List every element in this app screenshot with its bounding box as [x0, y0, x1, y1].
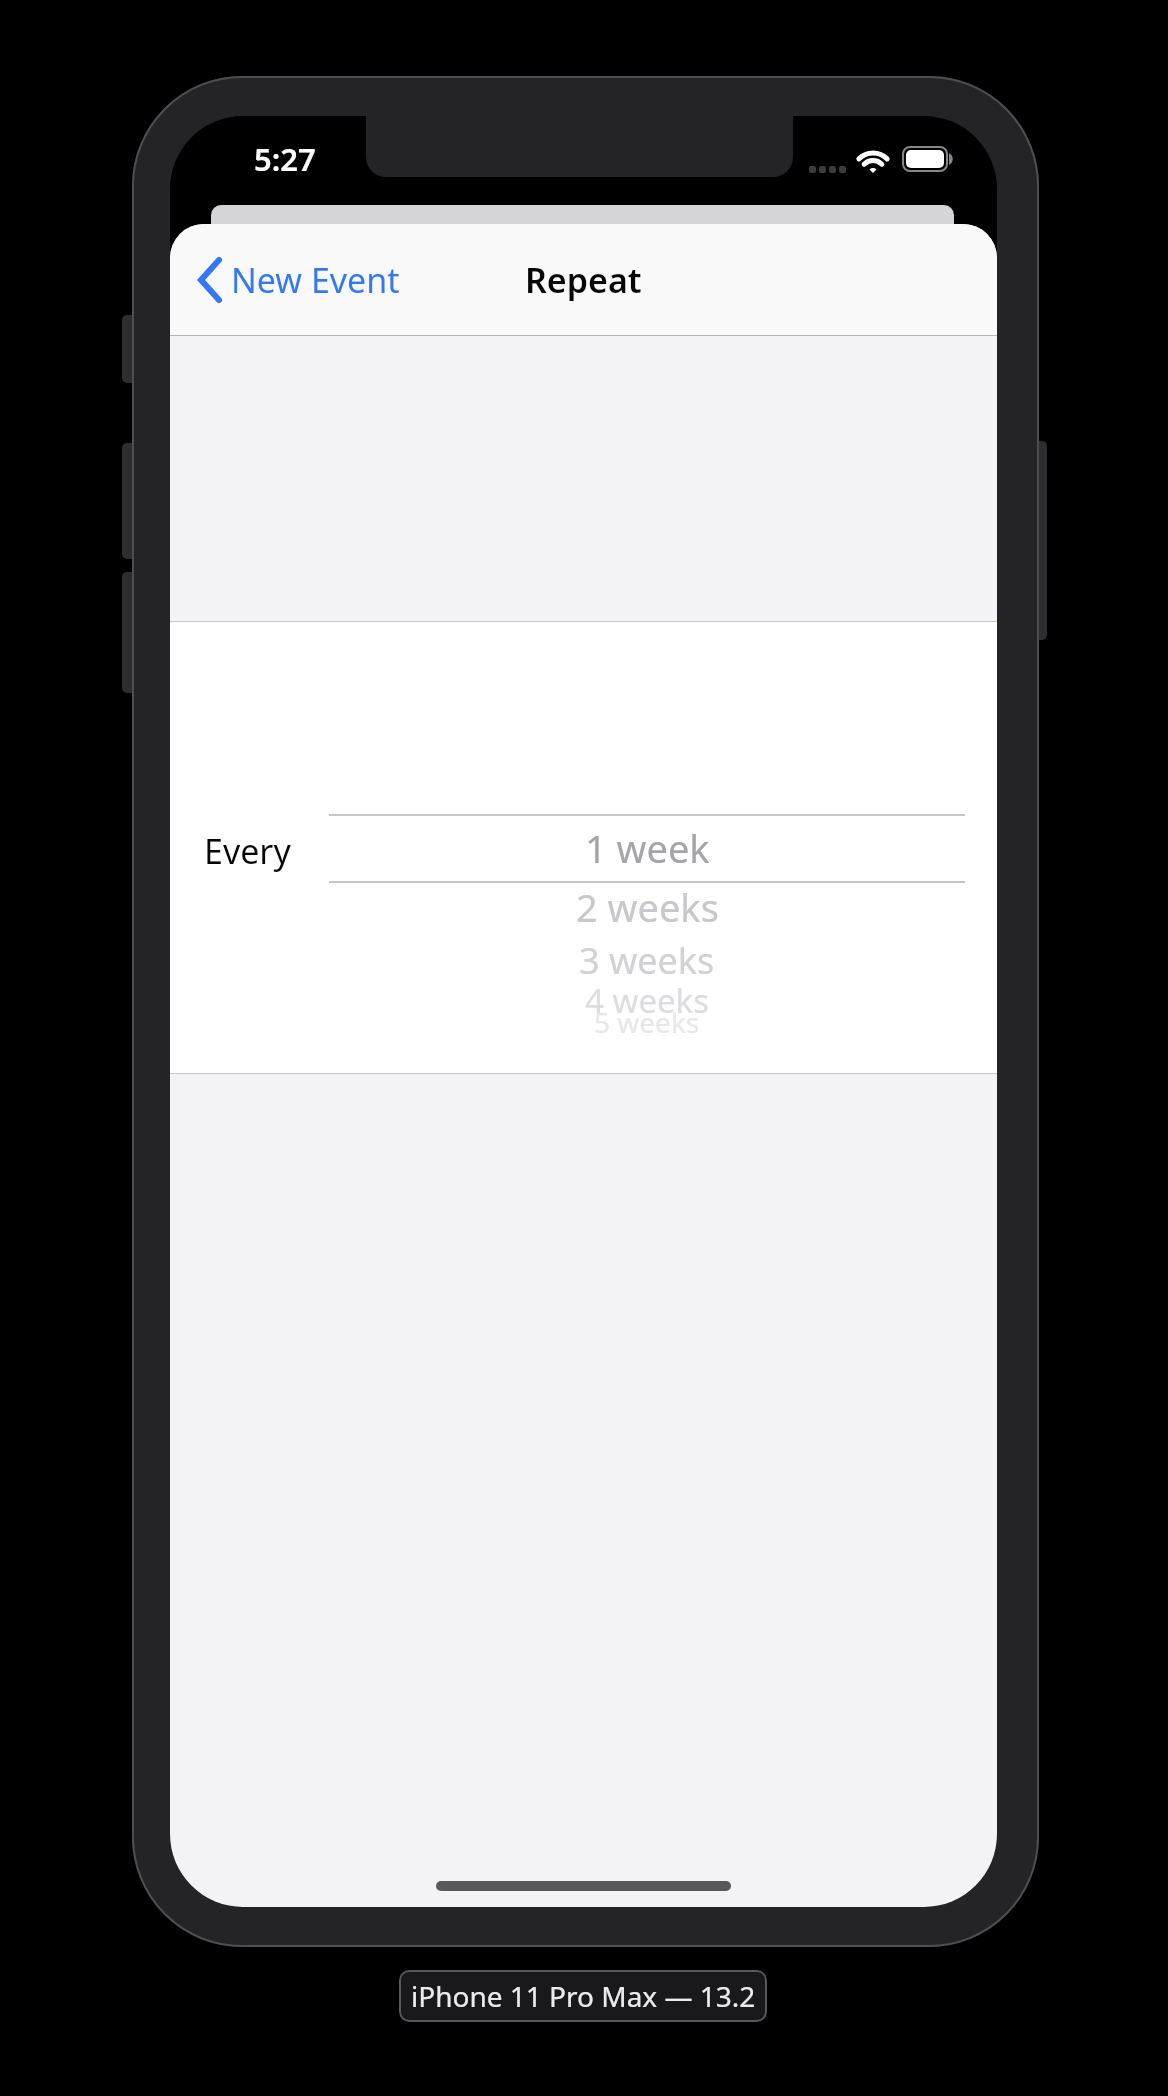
staticText: 3 weeks: [579, 936, 715, 985]
staticText: 1 week: [585, 822, 710, 874]
button[interactable]: 1 week: [329, 815, 965, 881]
staticText: 5 weeks: [594, 1003, 700, 1041]
button[interactable]: New Event: [190, 254, 400, 306]
staticText: Repeat: [525, 257, 642, 303]
staticText: Every: [204, 828, 291, 874]
staticText: New Event: [231, 257, 400, 303]
staticText: 2 weeks: [576, 881, 719, 933]
staticText: 4 weeks: [585, 978, 710, 1023]
staticText: iPhone 11 Pro Max — 13.2: [411, 1977, 756, 2015]
staticText: 5:27: [254, 138, 316, 180]
